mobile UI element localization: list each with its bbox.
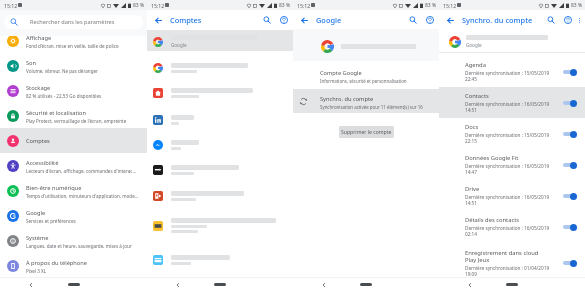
staticText: Dernière synchronisation : 15/05/2019 — [465, 132, 550, 138]
button[interactable]: Home — [68, 283, 80, 286]
button[interactable]: Back — [152, 14, 164, 26]
staticText: Fond d'écran, mise en veille, taille de … — [26, 43, 119, 49]
button[interactable]: Contacts — [439, 87, 585, 118]
button[interactable]: Back — [28, 282, 34, 288]
button[interactable]: Accessibilité — [0, 153, 147, 178]
button[interactable]: Rechercher dans les paramètres — [4, 15, 143, 29]
staticText: Compte Google — [320, 69, 362, 77]
button[interactable] — [147, 112, 293, 127]
button[interactable]: Agenda — [439, 56, 585, 87]
button[interactable]: Toggle Données Google Fit — [561, 158, 579, 172]
staticText: 02:14 — [465, 231, 477, 237]
button[interactable]: Docs — [439, 118, 585, 149]
button[interactable]: Supprimer le compte — [339, 126, 394, 138]
button[interactable]: Son — [0, 53, 147, 78]
staticText: Accessibilité — [26, 159, 59, 167]
button[interactable]: Back — [298, 14, 310, 26]
button[interactable]: Données Google Fit — [439, 149, 585, 180]
staticText: Dernière synchronisation : 16/05/2019 — [465, 163, 550, 169]
staticText: Sécurité et localisation — [26, 109, 87, 117]
staticText: 82 % utilisés - 22,53 Go disponibles — [26, 93, 102, 99]
staticText: Drive — [465, 185, 480, 193]
button[interactable]: Search — [260, 13, 273, 26]
button[interactable]: Comptes — [0, 128, 147, 153]
button[interactable]: Help — [561, 13, 574, 26]
button[interactable]: Help — [277, 13, 290, 26]
button[interactable]: Search — [406, 13, 419, 26]
button[interactable]: Toggle Détails des contacts — [561, 220, 579, 234]
staticText: Affichage — [26, 34, 52, 42]
staticText: 14:47 — [465, 169, 477, 175]
staticText: 83 % — [279, 2, 291, 9]
staticText: 83 % — [571, 2, 583, 9]
button[interactable]: Home — [360, 283, 372, 286]
staticText: Informations, sécurité et personnalisati… — [320, 78, 407, 84]
staticText: Détails des contacts — [465, 216, 520, 224]
button[interactable]: Bien-être numérique — [0, 178, 147, 203]
staticText: Contacts — [465, 92, 489, 100]
button[interactable]: Synchro. du compte — [293, 89, 439, 113]
button[interactable]: Sécurité et localisation — [0, 103, 147, 128]
staticText: Pixel 3 XL — [26, 268, 47, 274]
staticText: Comptes — [170, 15, 260, 25]
staticText: 14:51 — [465, 200, 477, 206]
staticText: Rechercher dans les paramètres — [30, 18, 115, 26]
staticText: Dernière synchronisation : 16/05/2019 — [465, 194, 550, 200]
button[interactable]: Back — [175, 282, 181, 288]
button[interactable]: Toggle Agenda — [561, 65, 579, 79]
staticText: Synchronisation activée pour 11 élément(… — [320, 104, 423, 110]
staticText: Données Google Fit — [465, 154, 519, 162]
staticText: Play Protect, verrouillage de l'écran, e… — [26, 118, 127, 124]
staticText: Synchro. du compte — [462, 15, 544, 25]
staticText: Enregistrement dans cloud Play Jeux — [465, 249, 539, 264]
staticText: 15:12 — [443, 2, 457, 9]
button[interactable]: Google — [147, 34, 293, 49]
staticText: Dernière synchronisation : 01/04/2019 — [465, 265, 550, 271]
staticText: Dernière synchronisation : 15/05/2019 — [465, 70, 550, 76]
button[interactable] — [147, 252, 293, 267]
button[interactable]: Help — [423, 13, 436, 26]
button[interactable] — [147, 188, 293, 203]
button[interactable]: À propos du téléphone — [0, 253, 147, 278]
staticText: Dernière synchronisation : 16/05/2019 — [465, 225, 550, 231]
button[interactable]: Toggle Contacts — [561, 96, 579, 110]
button[interactable]: Google — [0, 203, 147, 228]
button[interactable]: More options — [574, 15, 584, 25]
staticText: Volume, vibreur, Ne pas déranger — [26, 68, 98, 74]
staticText: Google — [466, 42, 482, 48]
staticText: 83 % — [425, 2, 437, 9]
button[interactable] — [147, 162, 293, 177]
staticText: Docs — [465, 123, 479, 131]
staticText: Agenda — [465, 61, 486, 69]
button[interactable]: Stockage — [0, 78, 147, 103]
button[interactable]: Enregistrement dans cloud Play Jeux — [439, 248, 585, 277]
button[interactable]: Toggle Drive — [561, 189, 579, 203]
staticText: 22:45 — [465, 76, 477, 82]
button[interactable]: Back — [321, 282, 327, 288]
button[interactable]: Search — [544, 13, 557, 26]
button[interactable]: Système — [0, 228, 147, 253]
button[interactable]: Home — [214, 283, 226, 286]
staticText: Dernière synchronisation : 16/05/2019 — [465, 101, 550, 107]
button[interactable] — [147, 215, 293, 236]
button[interactable]: Back — [467, 282, 473, 288]
button[interactable] — [147, 60, 293, 75]
staticText: Temps d'utilisation, minuteurs d'applica… — [26, 193, 139, 199]
button[interactable]: Toggle Enregistrement dans cloud Play Je… — [561, 256, 579, 270]
button[interactable]: Drive — [439, 180, 585, 211]
button[interactable] — [147, 85, 293, 100]
staticText: 22:15 — [465, 138, 477, 144]
button[interactable]: Affichage — [0, 28, 147, 53]
button[interactable]: Back — [444, 14, 456, 26]
button[interactable]: Détails des contacts — [439, 211, 585, 242]
staticText: 15:12 — [297, 2, 311, 9]
staticText: 19:09 — [465, 271, 477, 277]
staticText: Supprimer le compte — [341, 129, 392, 136]
staticText: Synchro. du compte — [320, 95, 374, 103]
staticText: 83 % — [133, 2, 145, 9]
button[interactable] — [147, 137, 293, 152]
button[interactable]: Home — [506, 283, 518, 286]
staticText: Système — [26, 234, 49, 242]
button[interactable]: Compte Google — [293, 61, 439, 89]
button[interactable]: Toggle Docs — [561, 127, 579, 141]
